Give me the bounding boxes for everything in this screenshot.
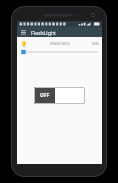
button[interactable]: Flashlight brightness bbox=[20, 40, 28, 48]
staticText: FlashLight bbox=[31, 29, 56, 36]
staticText: BRIGHTNESS bbox=[50, 42, 70, 46]
button[interactable]: Flashlight toggle, off bbox=[34, 87, 85, 104]
staticText: OFF bbox=[40, 92, 50, 99]
button[interactable]: Open navigation menu bbox=[20, 29, 27, 36]
staticText: SOS bbox=[92, 41, 99, 46]
button[interactable] bbox=[17, 48, 102, 56]
button[interactable]: SOS bbox=[92, 41, 99, 46]
